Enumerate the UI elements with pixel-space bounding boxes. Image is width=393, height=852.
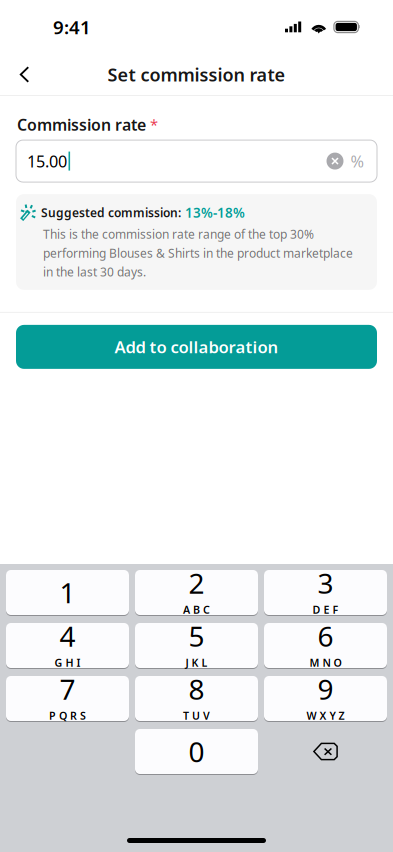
staticText: G H I	[54, 655, 80, 670]
staticText: 7	[59, 670, 75, 707]
staticText: *	[146, 115, 158, 134]
staticText: Set commission rate	[107, 62, 285, 86]
staticText: W X Y Z	[306, 708, 344, 723]
staticText: This is the commission rate range of the…	[43, 226, 353, 280]
button[interactable]: 6	[264, 622, 387, 669]
staticText: 0	[188, 733, 204, 770]
button[interactable]: 1	[6, 569, 129, 616]
staticText: T U V	[183, 708, 210, 723]
staticText: 3	[317, 564, 333, 601]
staticText: 6	[317, 617, 333, 654]
staticText: 1	[59, 574, 75, 611]
staticText: A B C	[183, 602, 210, 617]
staticText: Suggested commission:	[41, 205, 181, 220]
button[interactable]: Clear text	[319, 145, 350, 177]
button[interactable]: Delete	[264, 728, 387, 775]
button[interactable]: 3	[264, 569, 387, 616]
button[interactable]: 0	[135, 728, 258, 775]
staticText: D E F	[312, 602, 338, 617]
button[interactable]: 7	[6, 675, 129, 722]
button[interactable]: Back	[0, 54, 49, 95]
staticText: 9:41	[53, 15, 91, 39]
staticText: 8	[188, 670, 204, 707]
button[interactable]: Add to collaboration	[16, 325, 377, 369]
staticText: Commission rate	[17, 114, 146, 135]
staticText: Add to collaboration	[114, 336, 278, 358]
staticText: %	[350, 150, 364, 172]
button[interactable]: 8	[135, 675, 258, 722]
staticText: 2	[188, 564, 204, 601]
button[interactable]: 4	[6, 622, 129, 669]
staticText: J K L	[185, 655, 207, 670]
staticText: M N O	[309, 655, 341, 670]
button[interactable]: 9	[264, 675, 387, 722]
button[interactable]: 2	[135, 569, 258, 616]
staticText: 4	[59, 617, 75, 654]
staticText: 5	[188, 617, 204, 654]
staticText: 13%-18%	[185, 204, 245, 221]
button[interactable]: 5	[135, 622, 258, 669]
staticText: 9	[317, 670, 333, 707]
staticText: 15.00	[27, 150, 67, 172]
staticText: P Q R S	[49, 708, 86, 723]
